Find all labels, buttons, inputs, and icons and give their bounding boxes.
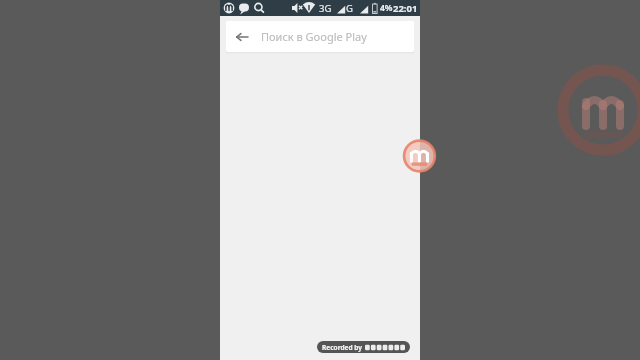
- staticText: 4%: [380, 2, 393, 14]
- staticText: 3G: [319, 2, 332, 15]
- button[interactable]: Back: [226, 21, 257, 52]
- staticText: G: [346, 2, 353, 15]
- staticText: Recorded by: [322, 343, 362, 352]
- staticText: Поиск в Google Play: [261, 29, 367, 44]
- button[interactable]: Back: [226, 21, 414, 52]
- staticText: 22:01: [393, 2, 418, 15]
